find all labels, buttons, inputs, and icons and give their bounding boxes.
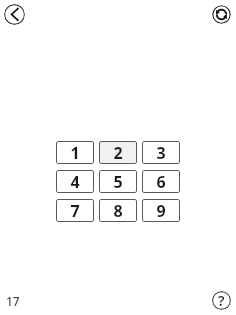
button[interactable]: 3 xyxy=(142,141,180,164)
button[interactable]: Help xyxy=(212,291,231,310)
staticText: 4 xyxy=(70,171,80,193)
button[interactable]: 4 xyxy=(56,170,94,193)
button[interactable]: 8 xyxy=(99,199,137,222)
button[interactable]: 9 xyxy=(142,199,180,222)
staticText: 7 xyxy=(70,200,80,222)
button[interactable]: 7 xyxy=(56,199,94,222)
staticText: 6 xyxy=(156,171,166,193)
staticText: 17 xyxy=(6,293,20,309)
staticText: 1 xyxy=(70,142,80,164)
button[interactable]: 1 xyxy=(56,141,94,164)
staticText: 3 xyxy=(156,142,166,164)
button[interactable]: 5 xyxy=(99,170,137,193)
button[interactable]: 2 xyxy=(99,141,137,164)
button[interactable]: 6 xyxy=(142,170,180,193)
button[interactable]: Back xyxy=(4,4,25,25)
staticText: 2 xyxy=(113,142,123,164)
staticText: 5 xyxy=(113,171,123,193)
staticText: 9 xyxy=(156,200,166,222)
staticText: ? xyxy=(218,291,225,310)
button[interactable]: Reset xyxy=(212,5,231,24)
staticText: 8 xyxy=(113,200,123,222)
